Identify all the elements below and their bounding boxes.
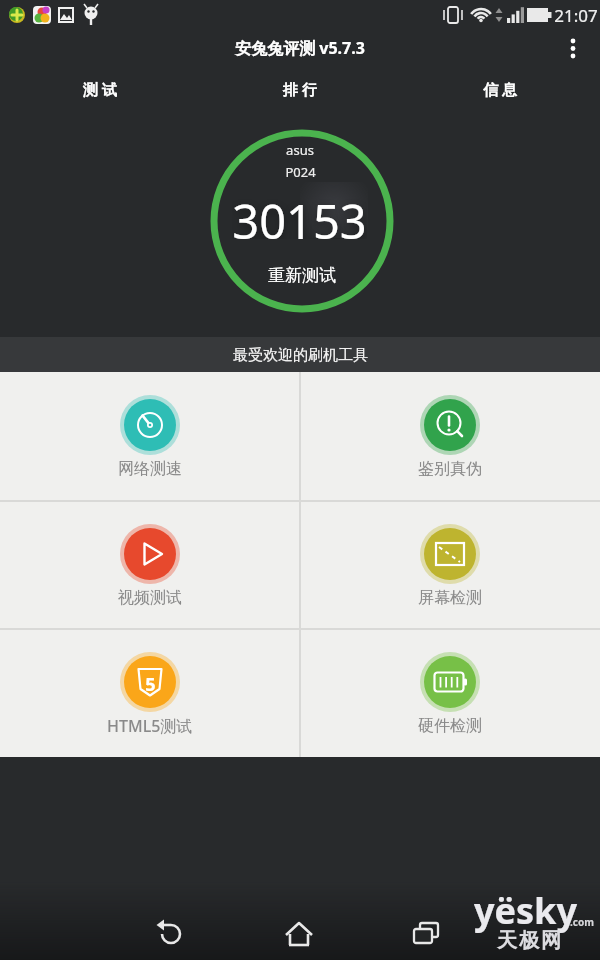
staticText: 硬件检测: [418, 716, 482, 736]
button[interactable]: [246, 903, 376, 960]
button[interactable]: [376, 903, 496, 960]
button[interactable]: 视频测试: [0, 501, 299, 629]
button[interactable]: 重新测试: [240, 255, 364, 295]
staticText: HTML5测试: [107, 715, 193, 737]
button[interactable]: HTML5测试: [0, 629, 299, 757]
staticText: P024: [285, 163, 316, 181]
button[interactable]: 排 行: [200, 70, 400, 108]
staticText: 信 息: [483, 79, 517, 99]
staticText: 鉴别真伪: [418, 459, 482, 479]
staticText: 排 行: [283, 79, 317, 99]
staticText: 5: [145, 672, 156, 697]
staticText: 安兔兔评测 v5.7.3: [235, 37, 365, 59]
staticText: 重新测试: [268, 265, 336, 286]
button[interactable]: 硬件检测: [300, 629, 599, 757]
staticText: 屏幕检测: [418, 588, 482, 608]
staticText: 网络测速: [118, 459, 182, 479]
staticText: 测 试: [83, 79, 117, 99]
button[interactable]: 测 试: [0, 70, 200, 108]
staticText: 21:07: [554, 4, 598, 27]
staticText: asus: [286, 141, 314, 159]
staticText: .com: [570, 915, 594, 929]
button[interactable]: [96, 903, 246, 960]
staticText: 最受欢迎的刷机工具: [233, 346, 368, 365]
staticText: 30153: [232, 189, 367, 239]
staticText: yësky: [474, 886, 577, 935]
staticText: 视频测试: [118, 588, 182, 608]
button[interactable]: 屏幕检测: [300, 501, 599, 629]
button[interactable]: 网络测速: [0, 372, 299, 500]
button[interactable]: [556, 32, 592, 66]
staticText: 天极网: [496, 928, 562, 953]
button[interactable]: 鉴别真伪: [300, 372, 599, 500]
button[interactable]: 信 息: [400, 70, 600, 108]
